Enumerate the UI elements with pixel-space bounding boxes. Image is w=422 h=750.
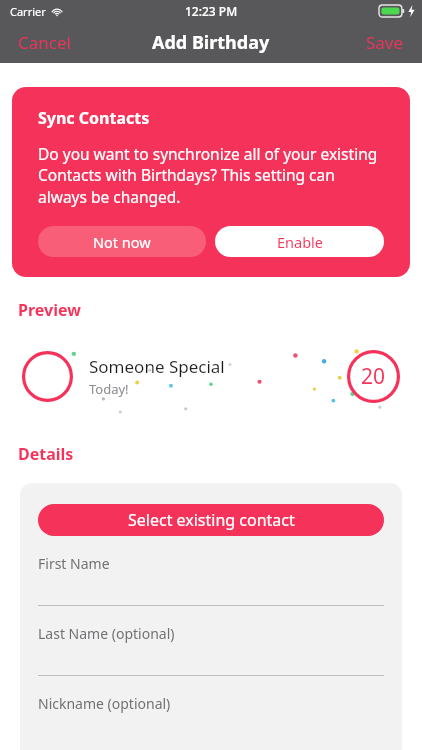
staticText: Save — [366, 31, 404, 54]
staticText: Cancel — [18, 31, 71, 54]
staticText: Sync Contacts — [38, 107, 150, 129]
button[interactable]: First Name — [20, 536, 402, 606]
staticText: Last Name (optional) — [38, 624, 175, 643]
staticText: 12:23 PM — [185, 3, 238, 19]
staticText: Preview — [18, 299, 81, 321]
button[interactable]: Enable — [215, 226, 384, 257]
staticText: Details — [18, 443, 74, 465]
staticText: 20 — [361, 362, 386, 391]
button[interactable]: Cancel — [0, 23, 89, 62]
staticText: Not now — [93, 232, 151, 252]
staticText: Someone Special — [89, 355, 225, 378]
staticText: Enable — [277, 232, 323, 252]
button[interactable]: Nickname (optional) — [20, 676, 402, 745]
staticText: Add Birthday — [152, 30, 270, 55]
button[interactable]: Last Name (optional) — [20, 606, 402, 676]
button[interactable]: Not now — [38, 226, 206, 257]
staticText: Carrier — [10, 4, 46, 19]
staticText: Nickname (optional) — [38, 694, 171, 713]
staticText: Do you want to synchronize all of your e… — [38, 143, 384, 208]
staticText: Today! — [89, 380, 129, 398]
button[interactable]: Save — [348, 23, 422, 62]
button[interactable]: Someone Special — [0, 335, 422, 417]
staticText: First Name — [38, 554, 110, 573]
staticText: Select existing contact — [128, 509, 295, 531]
button[interactable]: Select existing contact — [38, 504, 384, 536]
